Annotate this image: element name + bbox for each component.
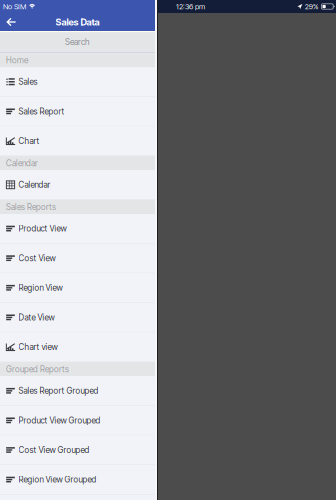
staticText: Cost View: [19, 253, 56, 263]
staticText: 12:36 pm: [176, 2, 205, 11]
staticText: Product View Grouped: [19, 415, 101, 425]
button[interactable]: Search: [0, 31, 155, 53]
staticText: Home: [6, 55, 28, 65]
staticText: Calendar: [19, 180, 51, 190]
staticText: Date View: [19, 312, 55, 322]
button[interactable]: Sales: [0, 67, 155, 97]
staticText: Chart: [19, 136, 40, 146]
staticText: Grouped Reports: [6, 364, 69, 374]
staticText: Cost View Grouped: [19, 445, 90, 455]
button[interactable]: Region View Grouped: [0, 465, 155, 495]
staticText: No SIM: [3, 2, 26, 11]
button[interactable]: Calendar: [0, 170, 155, 200]
staticText: Region View Grouped: [19, 475, 97, 485]
button[interactable]: Cost View Grouped: [0, 435, 155, 465]
button[interactable]: Chart view: [0, 332, 155, 362]
button[interactable]: Back: [1, 13, 20, 31]
staticText: Calendar: [6, 158, 38, 168]
staticText: Sales Report: [19, 106, 65, 116]
staticText: Sales Reports: [6, 202, 56, 212]
button[interactable]: Sales Report Grouped: [0, 376, 155, 406]
staticText: Product View: [19, 224, 67, 234]
button[interactable]: Product View: [0, 214, 155, 244]
button[interactable]: Chart: [0, 126, 155, 156]
staticText: Sales Data: [55, 16, 99, 28]
staticText: 29%: [305, 2, 319, 11]
staticText: Chart view: [19, 342, 58, 352]
staticText: Region View: [19, 283, 63, 293]
button[interactable]: Date View: [0, 303, 155, 332]
button[interactable]: Product View Grouped: [0, 406, 155, 435]
button[interactable]: Cost View: [0, 244, 155, 273]
staticText: Sales Report Grouped: [19, 386, 99, 396]
staticText: Sales: [19, 77, 38, 87]
staticText: Search: [65, 37, 90, 47]
button[interactable]: Sales Report: [0, 97, 155, 126]
button[interactable]: Region View: [0, 273, 155, 303]
